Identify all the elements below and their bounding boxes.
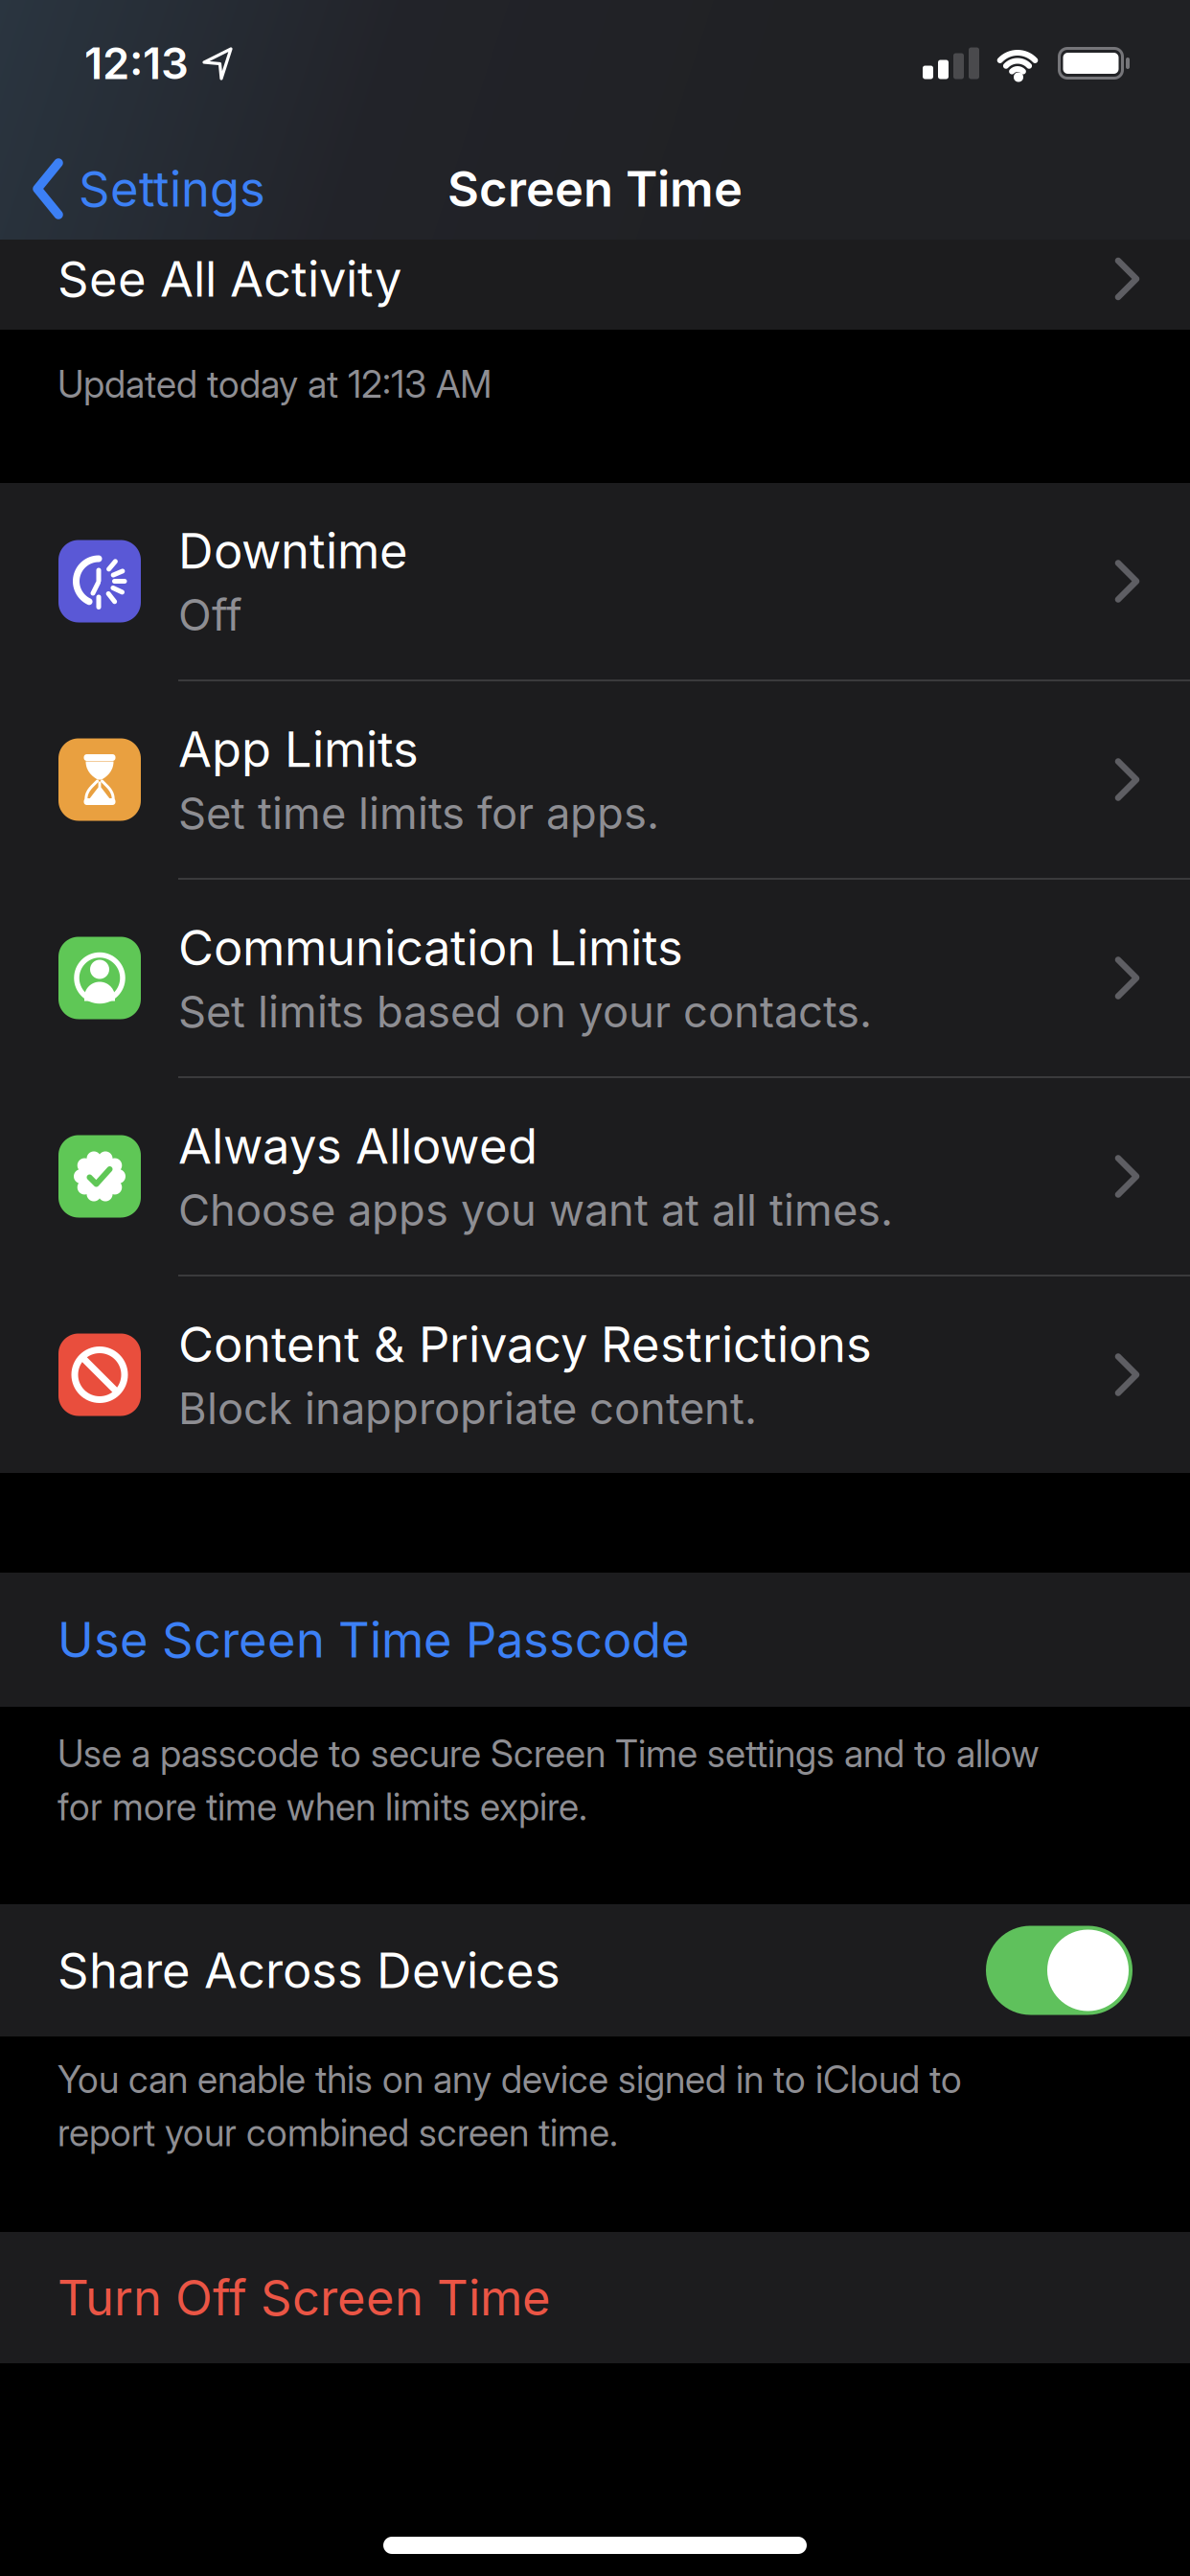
staticText: Set time limits for apps. — [178, 787, 659, 839]
staticText: Block inappropriate content. — [178, 1382, 757, 1434]
staticText: You can enable this on any device signed… — [57, 2058, 962, 2101]
staticText: Share Across Devices — [57, 1942, 561, 1999]
staticText: report your combined screen time. — [57, 2111, 618, 2155]
staticText: Screen Time — [447, 160, 743, 217]
staticText: Updated today at 12:13 AM — [57, 362, 492, 406]
staticText: Communication Limits — [178, 919, 683, 976]
button[interactable]: Content & Privacy Restrictions — [0, 1276, 1190, 1473]
staticText: Choose apps you want at all times. — [178, 1184, 893, 1235]
staticText: See All Activity — [57, 250, 401, 308]
staticText: Off — [178, 589, 242, 640]
staticText: Use Screen Time Passcode — [57, 1611, 690, 1668]
button[interactable]: Always Allowed — [0, 1078, 1190, 1275]
button[interactable]: Communication Limits — [0, 880, 1190, 1076]
button[interactable]: Settings — [33, 153, 265, 213]
staticText: Turn Off Screen Time — [57, 2269, 551, 2326]
button[interactable]: Share Across Devices — [0, 1904, 1190, 2036]
staticText: Always Allowed — [178, 1117, 538, 1175]
staticText: Settings — [79, 160, 265, 217]
staticText: Content & Privacy Restrictions — [178, 1316, 872, 1373]
staticText: Use a passcode to secure Screen Time set… — [57, 1732, 1040, 1775]
button[interactable]: App Limits — [0, 681, 1190, 878]
staticText: for more time when limits expire. — [57, 1785, 587, 1829]
staticText: Set limits based on your contacts. — [178, 986, 872, 1037]
button[interactable]: Turn Off Screen Time — [0, 2232, 1190, 2363]
button[interactable]: See All Activity — [0, 240, 1190, 330]
button[interactable]: Use Screen Time Passcode — [0, 1573, 1190, 1707]
staticText: App Limits — [178, 721, 419, 778]
staticText: 12:13 — [84, 38, 189, 89]
staticText: Downtime — [178, 522, 408, 580]
button[interactable]: Downtime — [0, 483, 1190, 679]
